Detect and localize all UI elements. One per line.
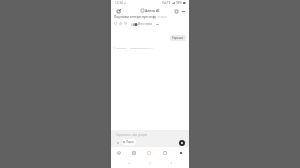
staticText: Хорошо: [172, 36, 184, 40]
button[interactable]: Add attachment: [115, 140, 120, 145]
button[interactable]: Dislike: [123, 21, 128, 26]
button[interactable]: Recents: [168, 160, 174, 166]
button[interactable]: Back: [126, 160, 132, 166]
staticText: VoLTE: [162, 1, 171, 5]
button[interactable]: Like: [118, 21, 123, 26]
staticText: Подскажи интересную инфу: [114, 15, 157, 19]
button[interactable]: Chats: [172, 7, 180, 15]
staticText: вчера: [158, 15, 167, 19]
staticText: 98%: [176, 1, 182, 5]
button[interactable]: Profile: [173, 147, 189, 158]
button[interactable]: Assistant: [141, 147, 157, 158]
button[interactable]: Voice input: [179, 140, 185, 146]
staticText: Источники: [138, 22, 153, 26]
button[interactable]: Поиск: [122, 139, 136, 145]
button[interactable]: More options: [180, 8, 186, 14]
staticText: 12:34: [115, 1, 123, 5]
staticText: сгенерировано ИИ: [130, 46, 153, 49]
button[interactable]: Sources: [131, 22, 153, 26]
button[interactable]: More: [155, 22, 159, 26]
button[interactable]: Home: [111, 147, 126, 158]
staticText: Поиск: [126, 140, 134, 144]
button[interactable]: Regenerate: [113, 21, 118, 26]
staticText: Алиса AI: [145, 8, 160, 13]
staticText: Спросите о чём угодно: [116, 133, 148, 137]
button[interactable]: Catalog: [126, 147, 141, 158]
staticText: Правила: [116, 46, 127, 49]
button[interactable]: New chat: [114, 6, 123, 15]
button[interactable]: Хорошо: [170, 35, 186, 41]
button[interactable]: Алиса AI: [141, 8, 160, 13]
button[interactable]: Cart: [157, 147, 173, 158]
button[interactable]: Home: [147, 160, 153, 166]
